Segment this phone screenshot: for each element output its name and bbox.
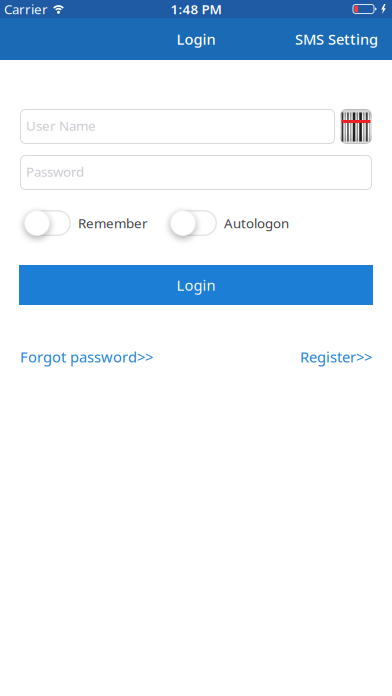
staticText: 1:48 PM: [170, 0, 221, 18]
button[interactable]: Register>>: [300, 347, 372, 366]
staticText: Password: [26, 163, 84, 180]
button[interactable]: Remember: [24, 210, 148, 236]
button[interactable]: Autologon: [170, 210, 289, 236]
button[interactable]: Scan barcode: [340, 109, 372, 144]
staticText: Carrier: [4, 0, 48, 18]
button[interactable]: Forgot password>>: [20, 347, 153, 366]
staticText: User Name: [26, 117, 96, 134]
staticText: Autologon: [224, 214, 289, 232]
staticText: Login: [176, 29, 215, 49]
staticText: Remember: [78, 214, 148, 232]
button[interactable]: SMS Setting: [295, 29, 378, 49]
staticText: Login: [176, 275, 215, 295]
button[interactable]: Login: [19, 265, 373, 305]
staticText: Register>>: [300, 347, 372, 366]
staticText: SMS Setting: [295, 29, 378, 49]
staticText: Forgot password>>: [20, 347, 153, 366]
